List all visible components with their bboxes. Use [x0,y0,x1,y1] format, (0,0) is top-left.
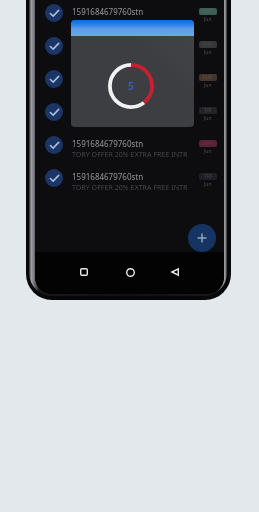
staticText: Jun [204,49,212,56]
button[interactable]: Recents [70,258,98,286]
button[interactable]: Home [116,258,144,286]
staticText: TAT [204,107,213,114]
button[interactable]: Add [188,224,216,252]
staticText: Jun [204,115,212,122]
staticText: Jun [204,181,212,188]
staticText: TORY OFFER 20% EXTRA FREE INTR [72,83,188,93]
staticText: TORY OFFER 20% EXTRA FREE INTR [72,149,188,159]
button[interactable]: 1591684679760stn [35,62,224,95]
staticText: Jun [204,148,212,155]
button[interactable]: 1591684679760stn [35,0,224,29]
staticText: 1591684679760stn [72,138,144,149]
staticText: FUE [203,74,213,81]
button[interactable]: 1591684679760stn [35,128,224,161]
staticText: TORY OFFER 20% EXTRA FREE INTR [72,17,188,27]
staticText: TRF [204,173,213,180]
button[interactable]: 1591684679760stn [35,161,224,194]
staticText: TORY OFFER 20% EXTRA FREE INTR [72,182,188,192]
button[interactable]: 1591684679760stn [35,95,224,128]
staticText: 1591684679760stn [72,105,144,116]
button[interactable]: Back [161,258,189,286]
staticText: Jun [204,82,212,89]
staticText: BRK [203,41,213,48]
staticText: 5 [128,79,134,93]
staticText: 1591684679760stn [72,6,144,17]
staticText: 1591684679760stn [72,72,144,83]
staticText: Jun [204,16,212,23]
staticText: 1591684679760stn [72,171,144,182]
button[interactable]: 1591684679760stn [35,29,224,62]
